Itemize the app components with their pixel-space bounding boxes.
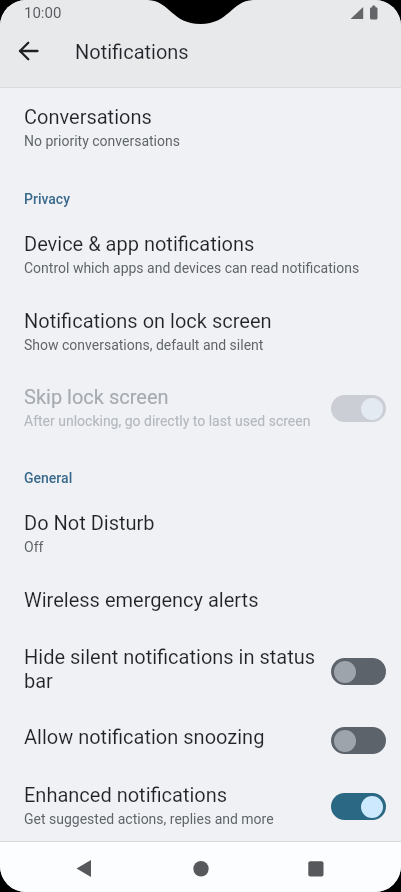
staticText: Privacy [24,191,71,207]
staticText: Hide silent notifications in status bar [24,645,320,693]
staticText: Off [24,539,44,555]
staticText: Do Not Disturb [24,511,155,534]
staticText: Notifications on lock screen [24,309,272,332]
staticText: No priority conversations [24,133,180,149]
staticText: Skip lock screen [24,385,169,408]
button[interactable]: Conversations [0,88,401,168]
button[interactable] [0,842,133,892]
staticText: Control which apps and devices can read … [24,260,360,276]
staticText: Enhanced notifications [24,783,228,806]
button[interactable]: Do Not Disturb [0,495,401,570]
button[interactable]: Wireless emergency alerts [0,570,401,625]
staticText: Show conversations, default and silent [24,337,264,353]
button[interactable] [6,29,50,73]
button[interactable] [133,842,267,892]
button[interactable] [331,658,386,685]
button[interactable] [331,793,386,820]
button[interactable] [331,727,386,754]
staticText: General [24,470,73,486]
button[interactable] [331,395,386,422]
staticText: Allow notification snoozing [24,725,265,748]
staticText: Conversations [24,105,152,128]
button[interactable]: Hide silent notifications in status bar [0,625,401,710]
staticText: Get suggested actions, replies and more [24,811,274,827]
staticText: Wireless emergency alerts [24,588,259,611]
staticText: After unlocking, go directly to last use… [24,413,311,429]
button[interactable]: Enhanced notifications [0,765,401,841]
staticText: Device & app notifications [24,232,255,255]
button[interactable]: Notifications on lock screen [0,295,401,368]
button[interactable] [267,842,401,892]
staticText: Notifications [75,40,189,63]
button[interactable]: Device & app notifications [0,218,401,295]
button[interactable]: Allow notification snoozing [0,710,401,765]
staticText: 10:00 [24,4,62,22]
